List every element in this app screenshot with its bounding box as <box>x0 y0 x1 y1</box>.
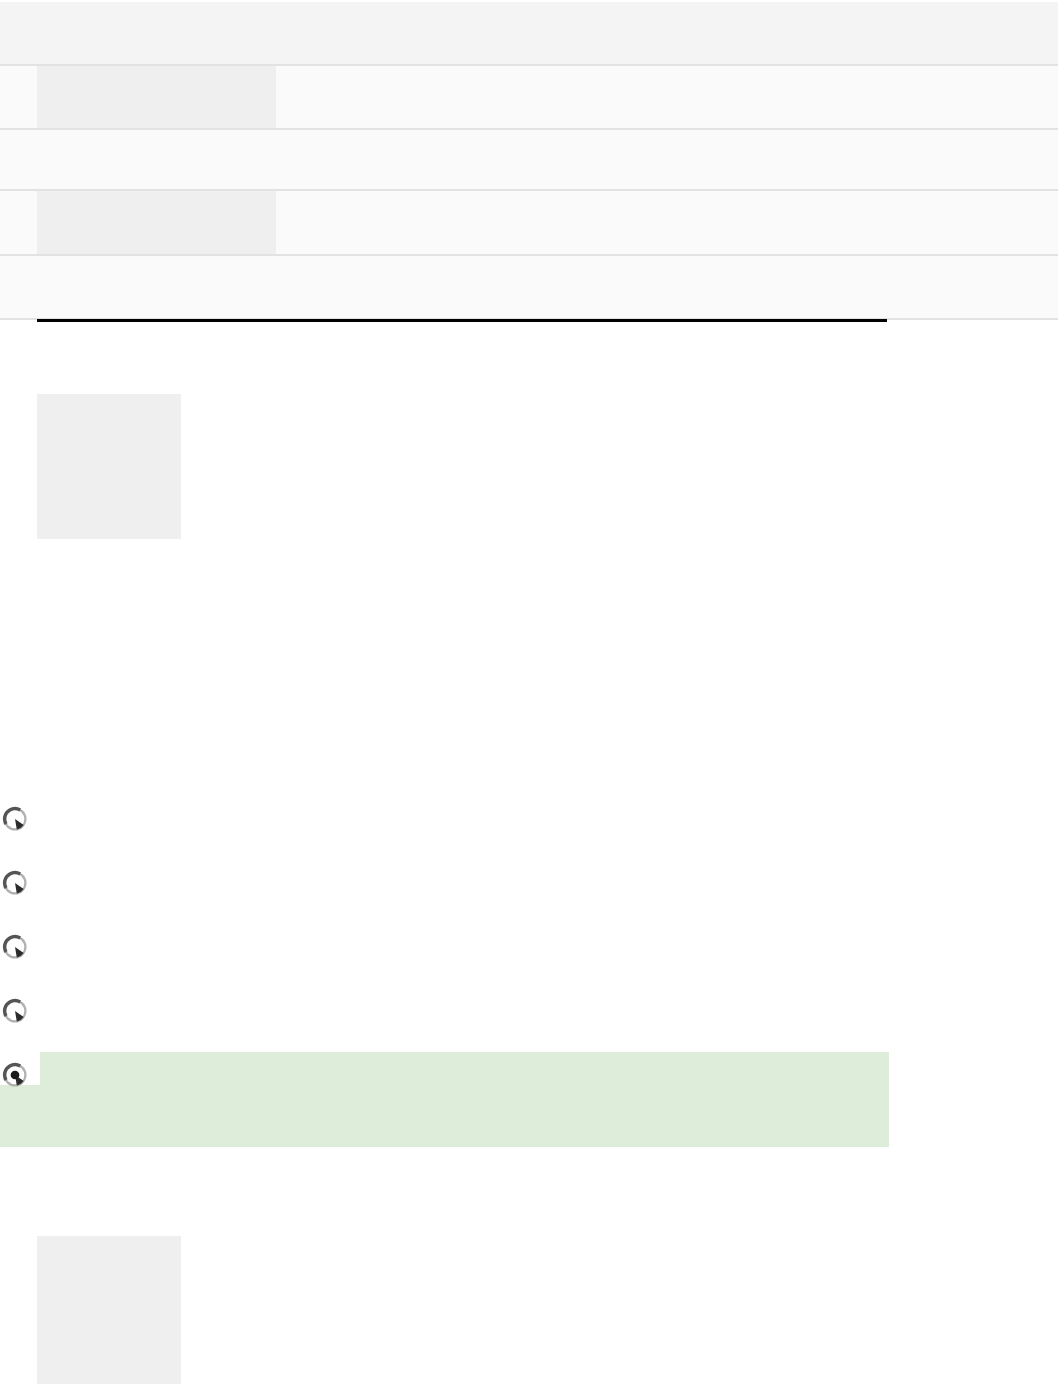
button[interactable]: Selected option <box>2 1062 28 1088</box>
button[interactable]: Option 1 <box>2 806 28 832</box>
button[interactable] <box>0 191 1058 254</box>
button[interactable]: Option 4 <box>2 998 28 1024</box>
button[interactable]: Option 2 <box>2 870 28 896</box>
button[interactable] <box>0 66 1058 128</box>
button[interactable]: Option 3 <box>2 934 28 960</box>
